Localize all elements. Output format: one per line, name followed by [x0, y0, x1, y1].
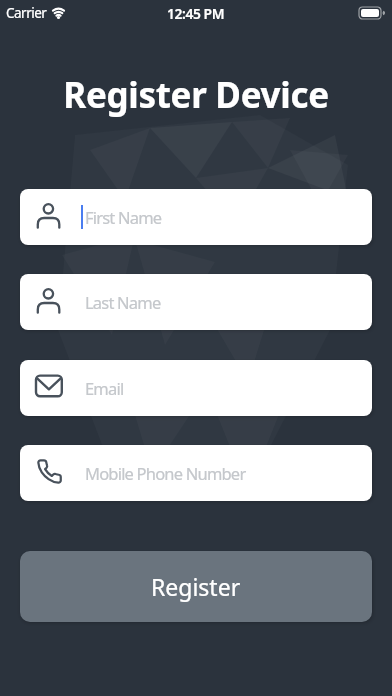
- staticText: Email: [85, 377, 124, 399]
- staticText: Last Name: [85, 291, 161, 313]
- staticText: Carrier: [6, 4, 47, 22]
- staticText: 12:45 PM: [167, 4, 225, 23]
- staticText: Register Device: [0, 71, 392, 119]
- staticText: First Name: [85, 206, 162, 228]
- staticText: Mobile Phone Number: [85, 462, 246, 484]
- staticText: Register: [151, 571, 241, 602]
